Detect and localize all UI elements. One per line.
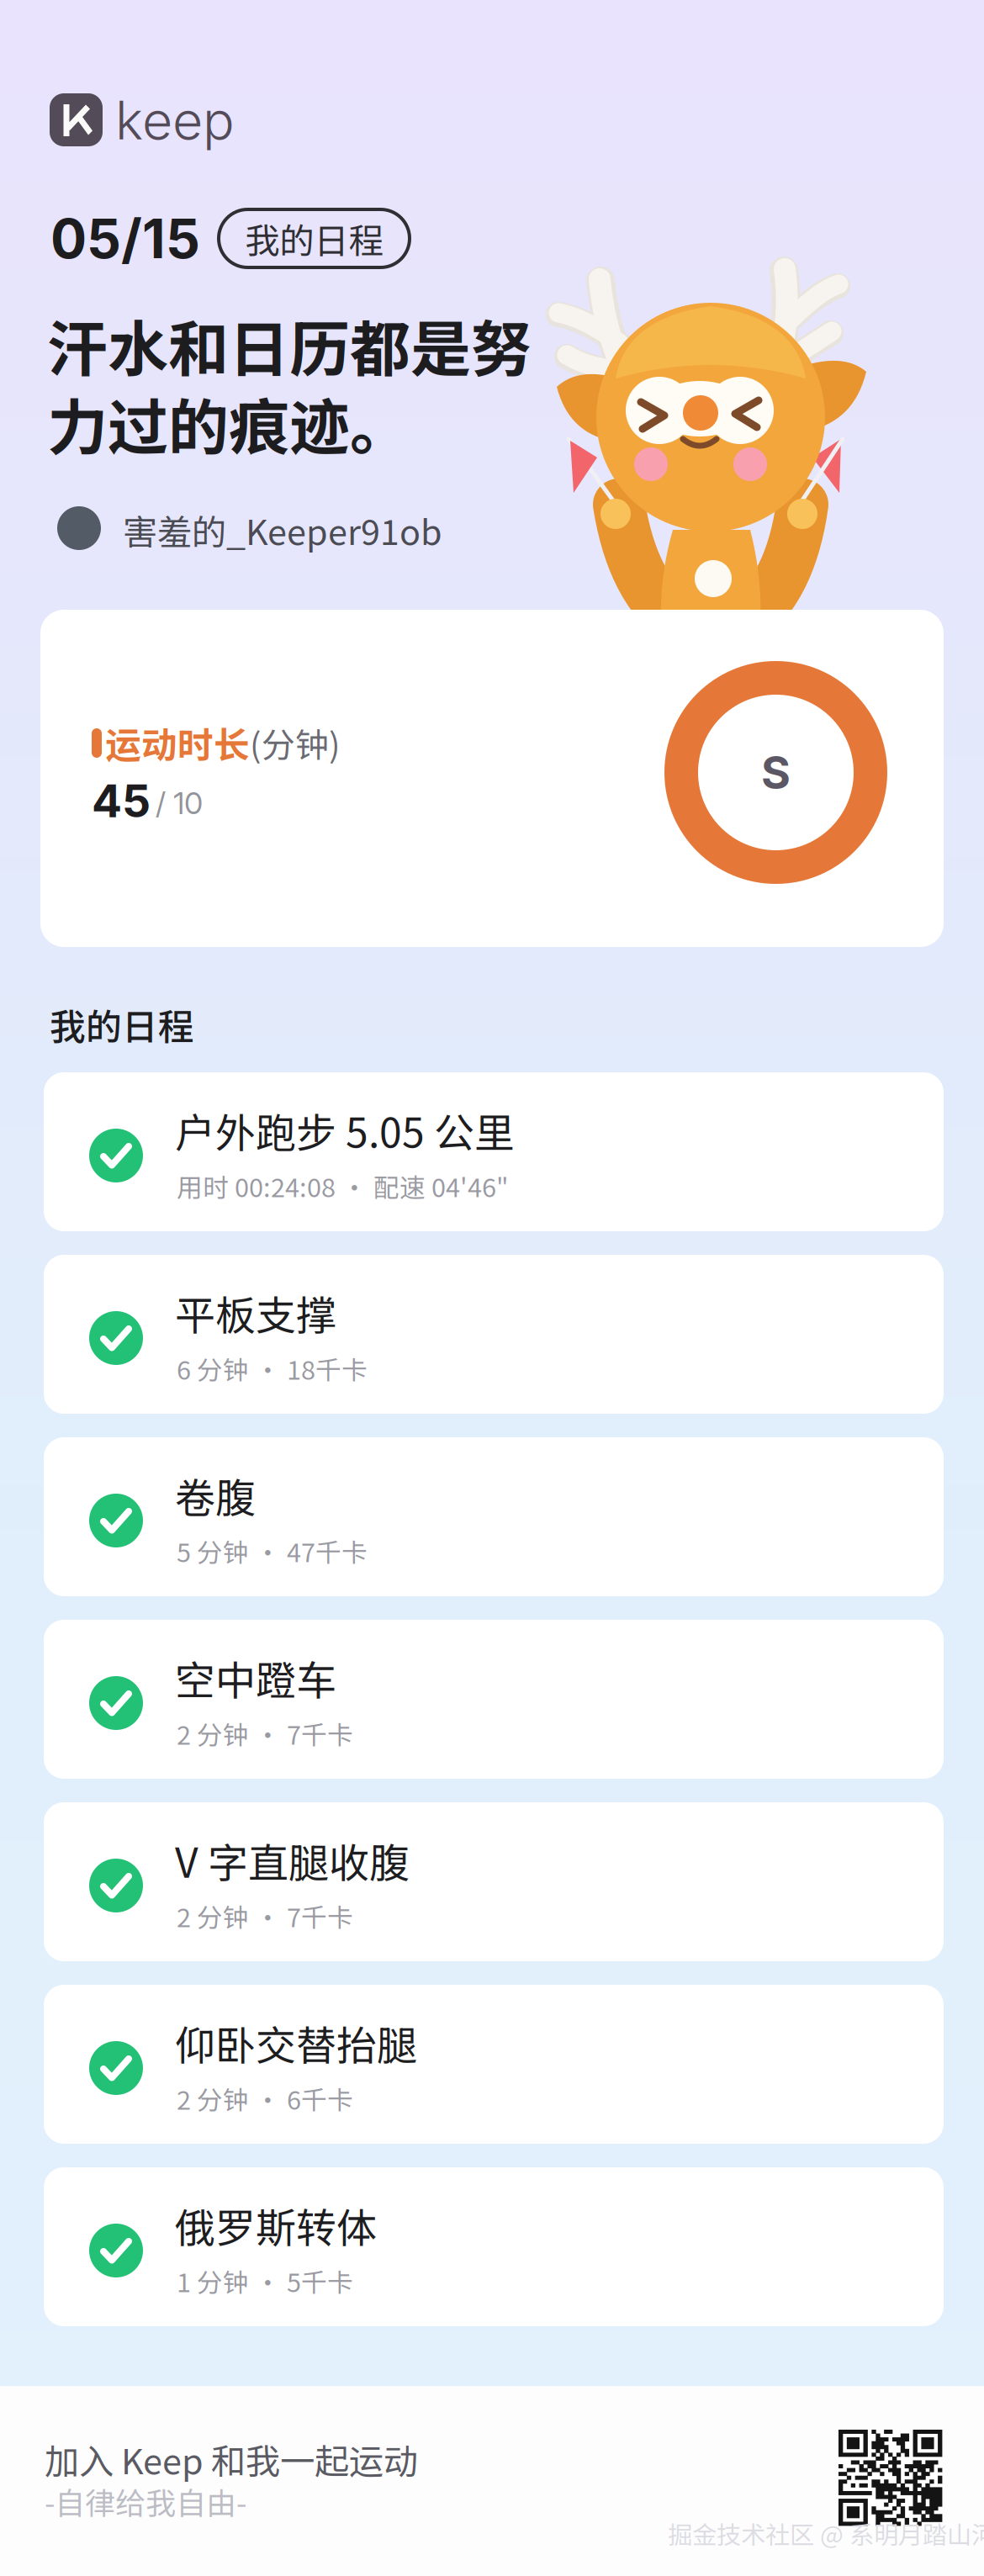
staticText: 45 — [92, 774, 151, 828]
staticText: 汗水和日历都是努 — [47, 301, 532, 389]
staticText: 1 分钟 · 5千卡 — [177, 2262, 353, 2300]
staticText: (分钟) — [250, 718, 341, 767]
staticText: -自律给我自由- — [45, 2479, 246, 2523]
staticText: 平板支撑 — [175, 1283, 336, 1342]
staticText: 5 分钟 · 47千卡 — [177, 1532, 368, 1570]
staticText: 6 分钟 · 18千卡 — [177, 1350, 368, 1387]
staticText: 卷腹 — [175, 1466, 256, 1524]
button[interactable]: 俄罗斯转体 — [44, 2167, 944, 2326]
button[interactable]: 卷腹 — [44, 1437, 944, 1596]
staticText: 05/15 — [50, 206, 200, 271]
staticText: 2 分钟 · 7千卡 — [177, 1897, 353, 1935]
staticText: 害羞的_Keeper91ob — [123, 505, 442, 555]
staticText: 2 分钟 · 7千卡 — [177, 1715, 353, 1752]
staticText: / 10 — [156, 785, 203, 821]
button[interactable]: 我的日程 — [219, 209, 410, 267]
button[interactable]: 仰卧交替抬腿 — [44, 1985, 944, 2144]
button[interactable]: V 字直腿收腹 — [44, 1802, 944, 1961]
staticText: 加入 Keep 和我一起运动 — [45, 2434, 418, 2484]
staticText: 空中蹬车 — [175, 1648, 336, 1707]
staticText: 俄罗斯转体 — [175, 2196, 377, 2254]
staticText: 力过的痕迹。 — [47, 379, 410, 467]
staticText: 我的日程 — [245, 213, 383, 264]
button[interactable]: 空中蹬车 — [44, 1620, 944, 1779]
staticText: 用时 00:24:08 · 配速 04'46" — [177, 1167, 509, 1205]
staticText: 运动时长 — [105, 717, 250, 769]
staticText: 户外跑步 5.05 公里 — [175, 1101, 515, 1159]
staticText: 我的日程 — [50, 998, 194, 1050]
button[interactable]: 户外跑步 5.05 公里 — [44, 1072, 944, 1231]
staticText: 仰卧交替抬腿 — [175, 2013, 417, 2072]
staticText: keep — [115, 88, 235, 152]
staticText: S — [761, 745, 791, 800]
staticText: V 字直腿收腹 — [175, 1831, 410, 1889]
staticText: 2 分钟 · 6千卡 — [177, 2080, 353, 2117]
button[interactable]: 平板支撑 — [44, 1255, 944, 1414]
staticText: 掘金技术社区 @ 系明月踏山河 — [668, 2515, 984, 2551]
